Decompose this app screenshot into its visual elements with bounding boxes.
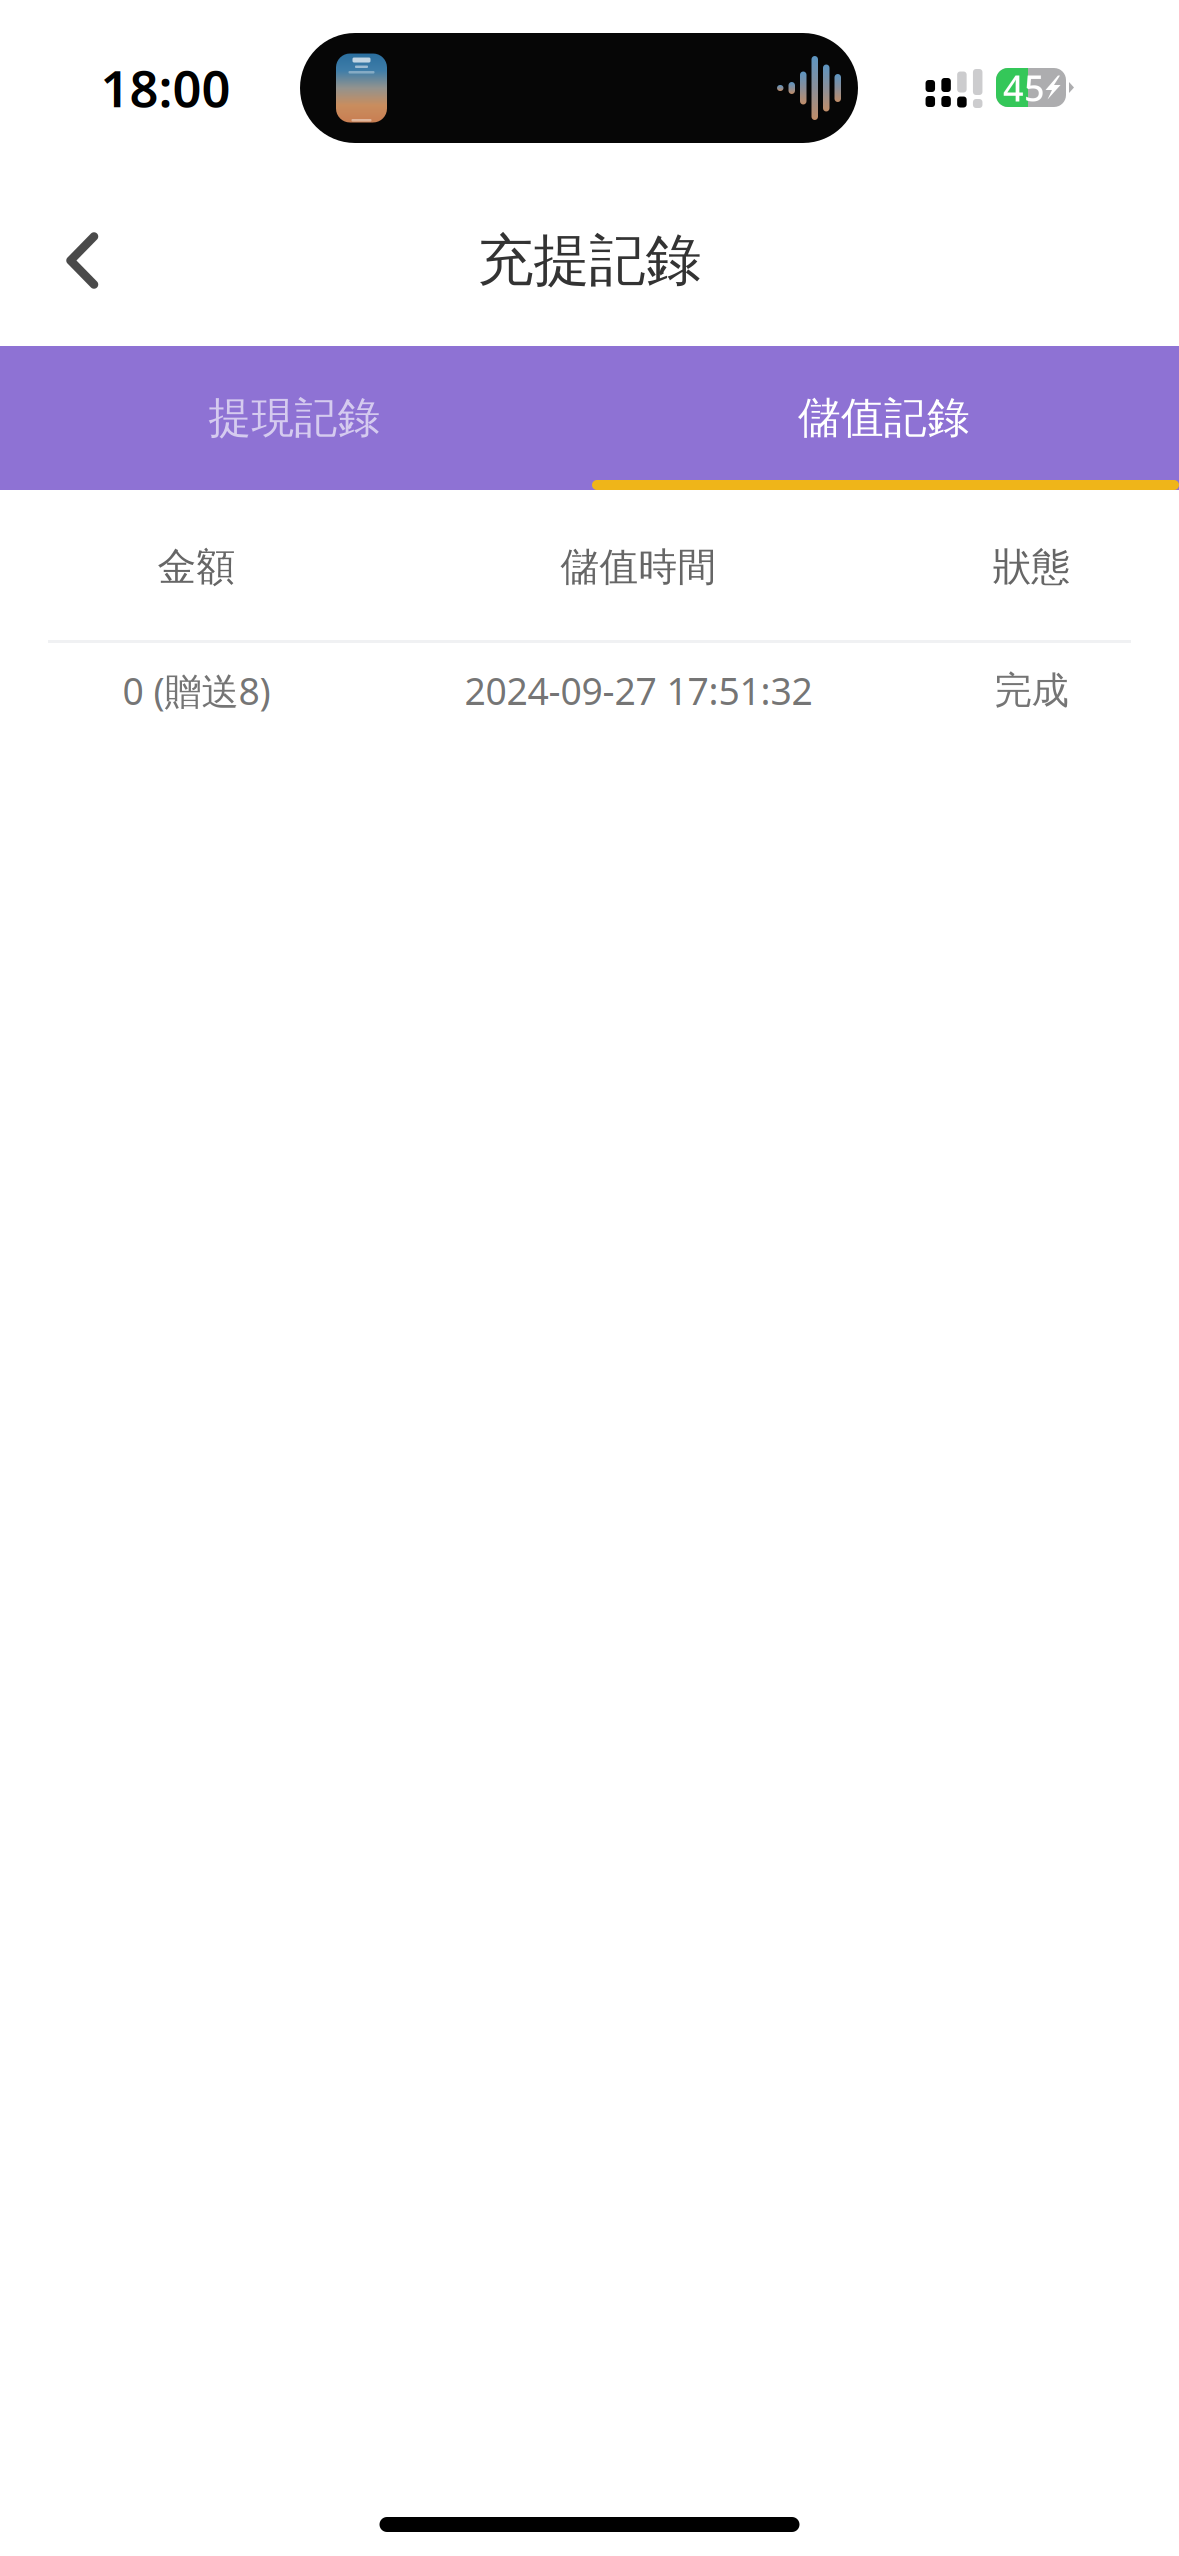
staticText: 儲值記錄 [798,392,970,444]
staticText: 0 (贈送8) [122,666,270,715]
button[interactable]: 提現記錄 [0,346,589,490]
staticText: 18:00 [100,54,230,121]
staticText: 2024-09-27 17:51:32 [464,666,812,715]
staticText: 完成 [994,668,1068,713]
staticText: 充提記錄 [477,226,701,295]
staticText: 狀態 [992,543,1070,591]
button[interactable]: 儲值記錄 [589,346,1179,490]
staticText: 金額 [157,543,235,591]
button[interactable]: Back [0,205,140,315]
staticText: 儲值時間 [560,543,716,591]
staticText: 提現記錄 [208,392,380,444]
staticText: 45 [1003,64,1045,111]
